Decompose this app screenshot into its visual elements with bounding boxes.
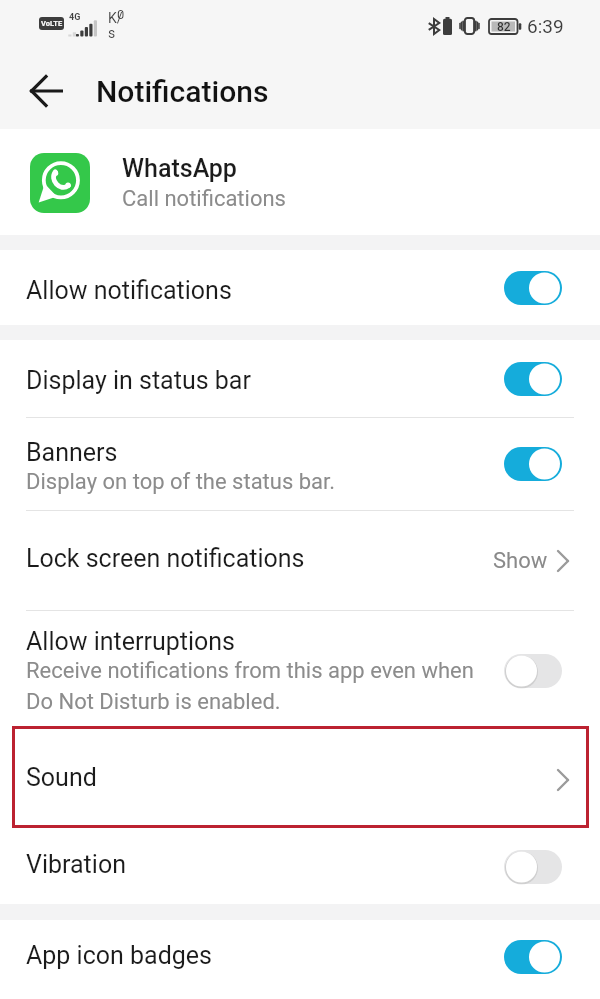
staticText: Allow interruptions [26,627,236,656]
button[interactable]: Vibration [0,829,600,904]
staticText: Display on top of the status bar. [26,469,336,495]
staticText: Lock screen notifications [26,544,493,573]
staticText: 4G [69,12,81,23]
button[interactable]: Back [0,52,92,129]
staticText: Call notifications [122,186,286,212]
button[interactable]: Lock screen notifications [0,511,600,610]
staticText: App icon badges [26,941,212,970]
button[interactable]: On [504,359,562,399]
button[interactable]: On [504,268,562,308]
button[interactable]: Display in status bar [0,340,600,417]
button[interactable]: Banners [0,418,600,510]
button[interactable]: WhatsApp [0,129,600,235]
staticText: 82 [497,20,511,34]
button[interactable]: On [504,444,562,484]
staticText: Show [493,548,548,574]
staticText: Display in status bar [26,366,251,395]
button[interactable]: Allow interruptions [0,611,600,730]
staticText: 6:39 [527,15,564,37]
staticText: WhatsApp [122,154,237,183]
staticText: 0 [117,7,125,22]
staticText: Notifications [96,74,269,109]
staticText: Sound [26,763,557,792]
staticText: Vibration [26,850,126,879]
button[interactable]: Allow notifications [0,250,600,325]
button[interactable]: Off [504,847,562,887]
button[interactable]: On [504,937,562,977]
staticText: Receive notifications from this app even… [26,658,474,714]
staticText: K/s [108,10,127,41]
staticText: Allow notifications [26,276,232,305]
staticText: Banners [26,438,118,467]
button[interactable]: App icon badges [0,920,600,994]
staticText: VoLTE [41,19,63,28]
button[interactable]: Off [504,651,562,691]
button[interactable]: Sound [0,730,600,829]
